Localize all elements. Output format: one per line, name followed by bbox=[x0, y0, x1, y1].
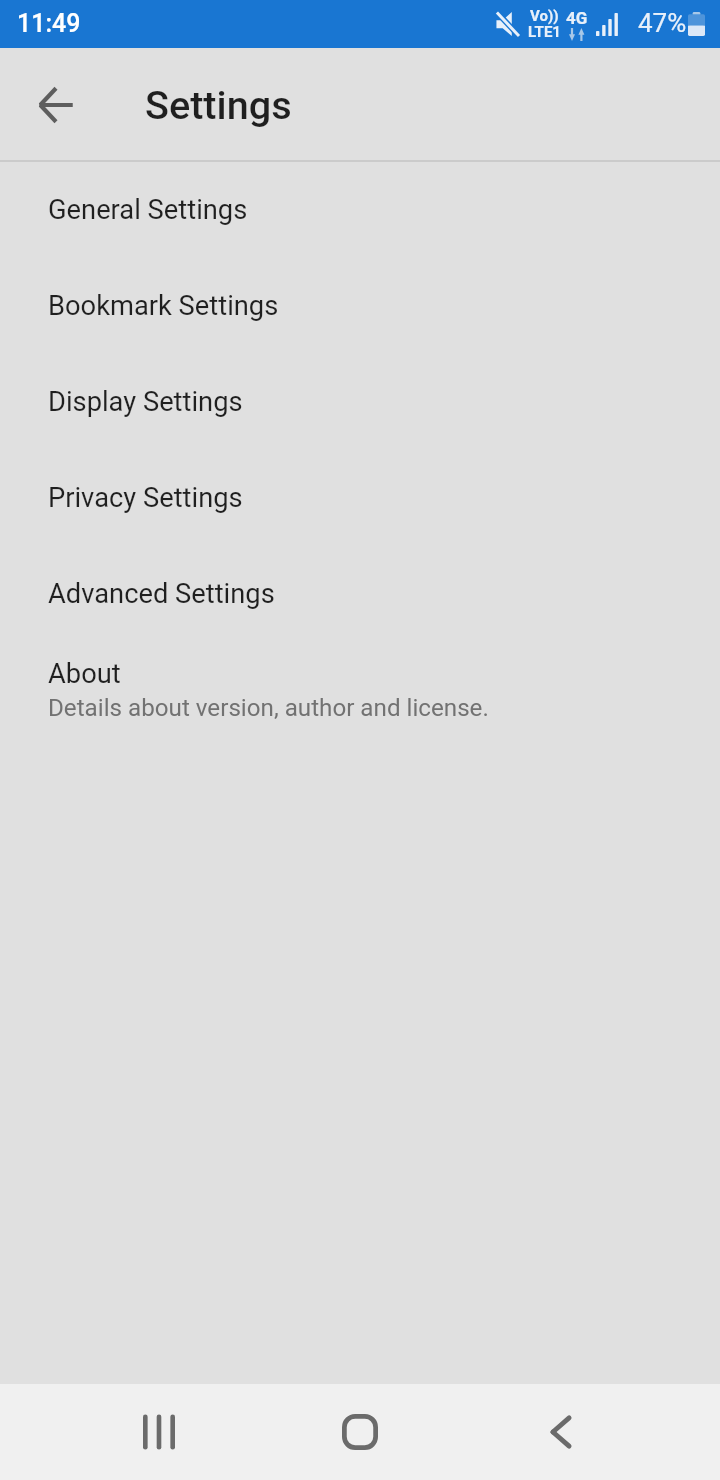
staticText: Advanced Settings bbox=[48, 578, 275, 610]
button[interactable]: About bbox=[0, 641, 720, 737]
button[interactable]: Navigate up bbox=[23, 72, 89, 138]
staticText: 47% bbox=[638, 8, 687, 38]
button[interactable]: Recent apps bbox=[99, 1384, 219, 1480]
button[interactable]: Advanced Settings bbox=[0, 545, 720, 641]
button[interactable]: Display Settings bbox=[0, 353, 720, 449]
button[interactable]: Home bbox=[300, 1384, 420, 1480]
staticText: 4G bbox=[566, 8, 588, 28]
button[interactable]: General Settings bbox=[0, 161, 720, 257]
staticText: Privacy Settings bbox=[48, 482, 243, 514]
staticText: Settings bbox=[145, 82, 292, 128]
staticText: Bookmark Settings bbox=[48, 290, 279, 322]
staticText: Details about version, author and licens… bbox=[48, 694, 489, 722]
staticText: General Settings bbox=[48, 194, 248, 226]
button[interactable]: Back bbox=[501, 1384, 621, 1480]
staticText: About bbox=[48, 658, 121, 690]
button[interactable]: Privacy Settings bbox=[0, 449, 720, 545]
staticText: Vo)) bbox=[530, 7, 559, 25]
button[interactable]: Bookmark Settings bbox=[0, 257, 720, 353]
staticText: LTE1 bbox=[528, 23, 561, 41]
staticText: 11:49 bbox=[17, 9, 81, 38]
staticText: Display Settings bbox=[48, 386, 243, 418]
